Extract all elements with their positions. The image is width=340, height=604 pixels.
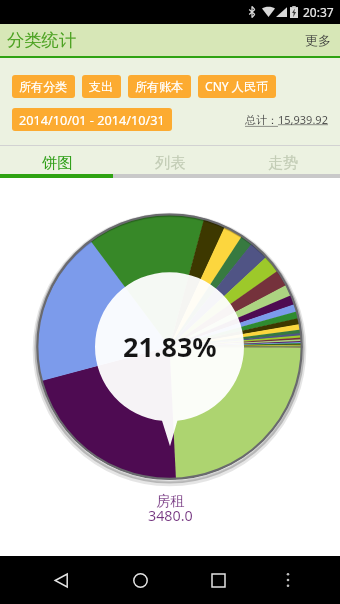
button[interactable]: 走势: [227, 146, 340, 178]
staticText: 走势: [268, 153, 299, 172]
button[interactable]: 所有分类: [12, 75, 75, 98]
button[interactable]: 所有账本: [128, 75, 191, 98]
staticText: 3480.0: [148, 506, 193, 525]
button[interactable]: Recents: [194, 556, 242, 604]
staticText: 房租: [156, 492, 185, 510]
staticText: 20:37: [303, 4, 334, 20]
staticText: 更多: [305, 32, 331, 48]
button[interactable]: Home: [116, 556, 164, 604]
button[interactable]: Menu: [273, 565, 303, 595]
button[interactable]: 2014/10/01 - 2014/10/31: [12, 108, 172, 131]
staticText: 21.83%: [123, 328, 217, 365]
staticText: CNY 人民币: [205, 78, 269, 95]
staticText: 列表: [155, 153, 186, 172]
staticText: 总计：15,939.92: [245, 112, 328, 127]
staticText: 分类统计: [7, 29, 77, 51]
button[interactable]: 支出: [82, 75, 121, 98]
button[interactable]: Back: [37, 556, 85, 604]
button[interactable]: 列表: [114, 146, 227, 178]
staticText: 2014/10/01 - 2014/10/31: [19, 111, 165, 128]
staticText: 所有账本: [135, 79, 184, 94]
staticText: 所有分类: [19, 79, 68, 94]
button[interactable]: 饼图: [0, 146, 114, 178]
staticText: 饼图: [42, 153, 73, 172]
staticText: 支出: [89, 79, 114, 94]
button[interactable]: 更多: [296, 24, 340, 56]
button[interactable]: CNY 人民币: [198, 75, 276, 98]
